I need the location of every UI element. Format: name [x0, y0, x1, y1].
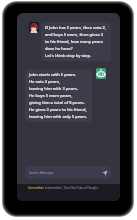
other: User avatar — [29, 22, 39, 33]
staticText: John starts with 5 pears. He eats 2 pear… — [29, 72, 88, 119]
button[interactable]: Send — [98, 166, 111, 179]
staticText: Intermediate — [28, 186, 44, 190]
button[interactable]: Send a Message — [25, 166, 111, 179]
staticText: Intermediate | Zero Shot Chain of Though… — [44, 186, 98, 190]
staticText: Send a Message — [29, 171, 54, 175]
other: Assistant avatar — [96, 68, 106, 79]
button[interactable]: Intermediate — [28, 186, 98, 190]
staticText: If John has 5 pears, then eats 2, and bu… — [45, 25, 106, 58]
